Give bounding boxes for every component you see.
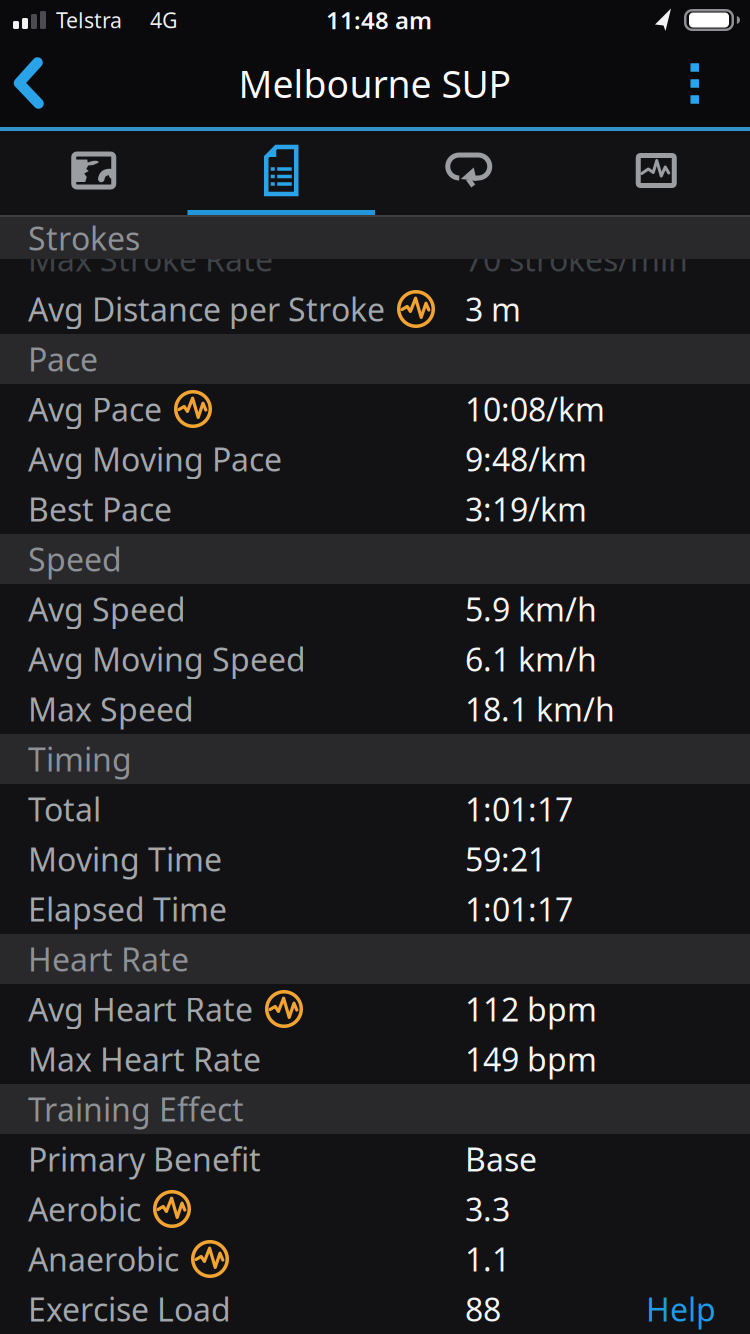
staticText: Total — [28, 788, 101, 830]
staticText: 149 bpm — [465, 1038, 597, 1080]
staticText: 11:48 am — [326, 4, 432, 36]
button[interactable]: Help — [646, 1288, 716, 1330]
staticText: Strokes — [28, 217, 140, 259]
staticText: Avg Moving Speed — [28, 638, 306, 680]
staticText: Melbourne SUP — [238, 59, 511, 108]
staticText: Avg Distance per Stroke — [28, 288, 385, 330]
staticText: Avg Moving Pace — [28, 438, 282, 480]
button[interactable]: Back — [0, 40, 74, 127]
staticText: Timing — [28, 738, 132, 780]
staticText: Avg Pace — [28, 388, 162, 430]
staticText: Avg Speed — [28, 588, 186, 630]
staticText: 88 — [465, 1288, 501, 1330]
staticText: Anaerobic — [28, 1238, 179, 1280]
staticText: 9:48/km — [465, 438, 587, 480]
staticText: Base — [465, 1138, 537, 1180]
staticText: 112 bpm — [465, 988, 597, 1030]
staticText: Telstra — [56, 6, 122, 34]
staticText: 3 m — [465, 288, 521, 330]
staticText: 1:01:17 — [465, 788, 573, 830]
button[interactable]: Laps — [375, 131, 562, 210]
button[interactable]: Stats — [187, 131, 375, 210]
staticText: 3:19/km — [465, 488, 587, 530]
staticText: Elapsed Time — [28, 888, 227, 930]
staticText: Primary Benefit — [28, 1138, 261, 1180]
staticText: Max Heart Rate — [28, 1038, 261, 1080]
staticText: Exercise Load — [28, 1288, 231, 1330]
staticText: Moving Time — [28, 838, 222, 880]
button[interactable]: More options — [664, 40, 750, 127]
staticText: 1.1 — [465, 1238, 510, 1280]
staticText: Max Stroke Rate — [28, 238, 273, 280]
staticText: Training Effect — [28, 1088, 244, 1130]
staticText: 3.3 — [465, 1188, 510, 1230]
staticText: Avg Heart Rate — [28, 988, 253, 1030]
staticText: Best Pace — [28, 488, 172, 530]
staticText: Speed — [28, 538, 122, 580]
staticText: 18.1 km/h — [465, 688, 615, 730]
staticText: Help — [646, 1288, 716, 1330]
staticText: 59:21 — [465, 838, 546, 880]
staticText: Pace — [28, 338, 98, 380]
staticText: Max Speed — [28, 688, 194, 730]
staticText: 5.9 km/h — [465, 588, 597, 630]
staticText: 10:08/km — [465, 388, 605, 430]
button[interactable]: Charts — [562, 131, 750, 210]
staticText: Heart Rate — [28, 938, 189, 980]
staticText: 4G — [150, 6, 178, 34]
staticText: Aerobic — [28, 1188, 141, 1230]
button[interactable]: Course — [0, 131, 187, 210]
staticText: 70 strokes/min — [465, 238, 688, 280]
staticText: 1:01:17 — [465, 888, 573, 930]
staticText: 6.1 km/h — [465, 638, 597, 680]
